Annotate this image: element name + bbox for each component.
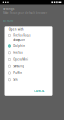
staticText: Samsung: [13, 64, 24, 68]
button[interactable]: Samsung: [4, 64, 52, 71]
staticText: Silk: [13, 78, 17, 81]
staticText: SET NOW: [3, 19, 14, 23]
button[interactable]: Opera Mini: [4, 57, 52, 64]
staticText: Dolphin: [13, 44, 25, 48]
button[interactable]: Firefox: [4, 50, 52, 57]
staticText: Firefox Focus: [13, 34, 30, 37]
staticText: Settings: [3, 7, 14, 11]
staticText: CANCEL: [34, 89, 44, 93]
staticText: Firefox: [13, 51, 22, 54]
button[interactable]: Dolphin: [4, 44, 52, 50]
button[interactable]: Firefox Focus: [4, 33, 52, 44]
staticText: Puffin: [13, 71, 22, 75]
staticText: Make Focus your default browser: [3, 11, 47, 15]
button[interactable]: Puffin: [4, 71, 52, 77]
button[interactable]: Silk: [4, 77, 52, 84]
staticText: always-on: [13, 38, 25, 42]
button[interactable]: CANCEL: [32, 88, 45, 94]
staticText: Open with: [9, 28, 24, 31]
staticText: Opera Mini: [13, 58, 28, 61]
